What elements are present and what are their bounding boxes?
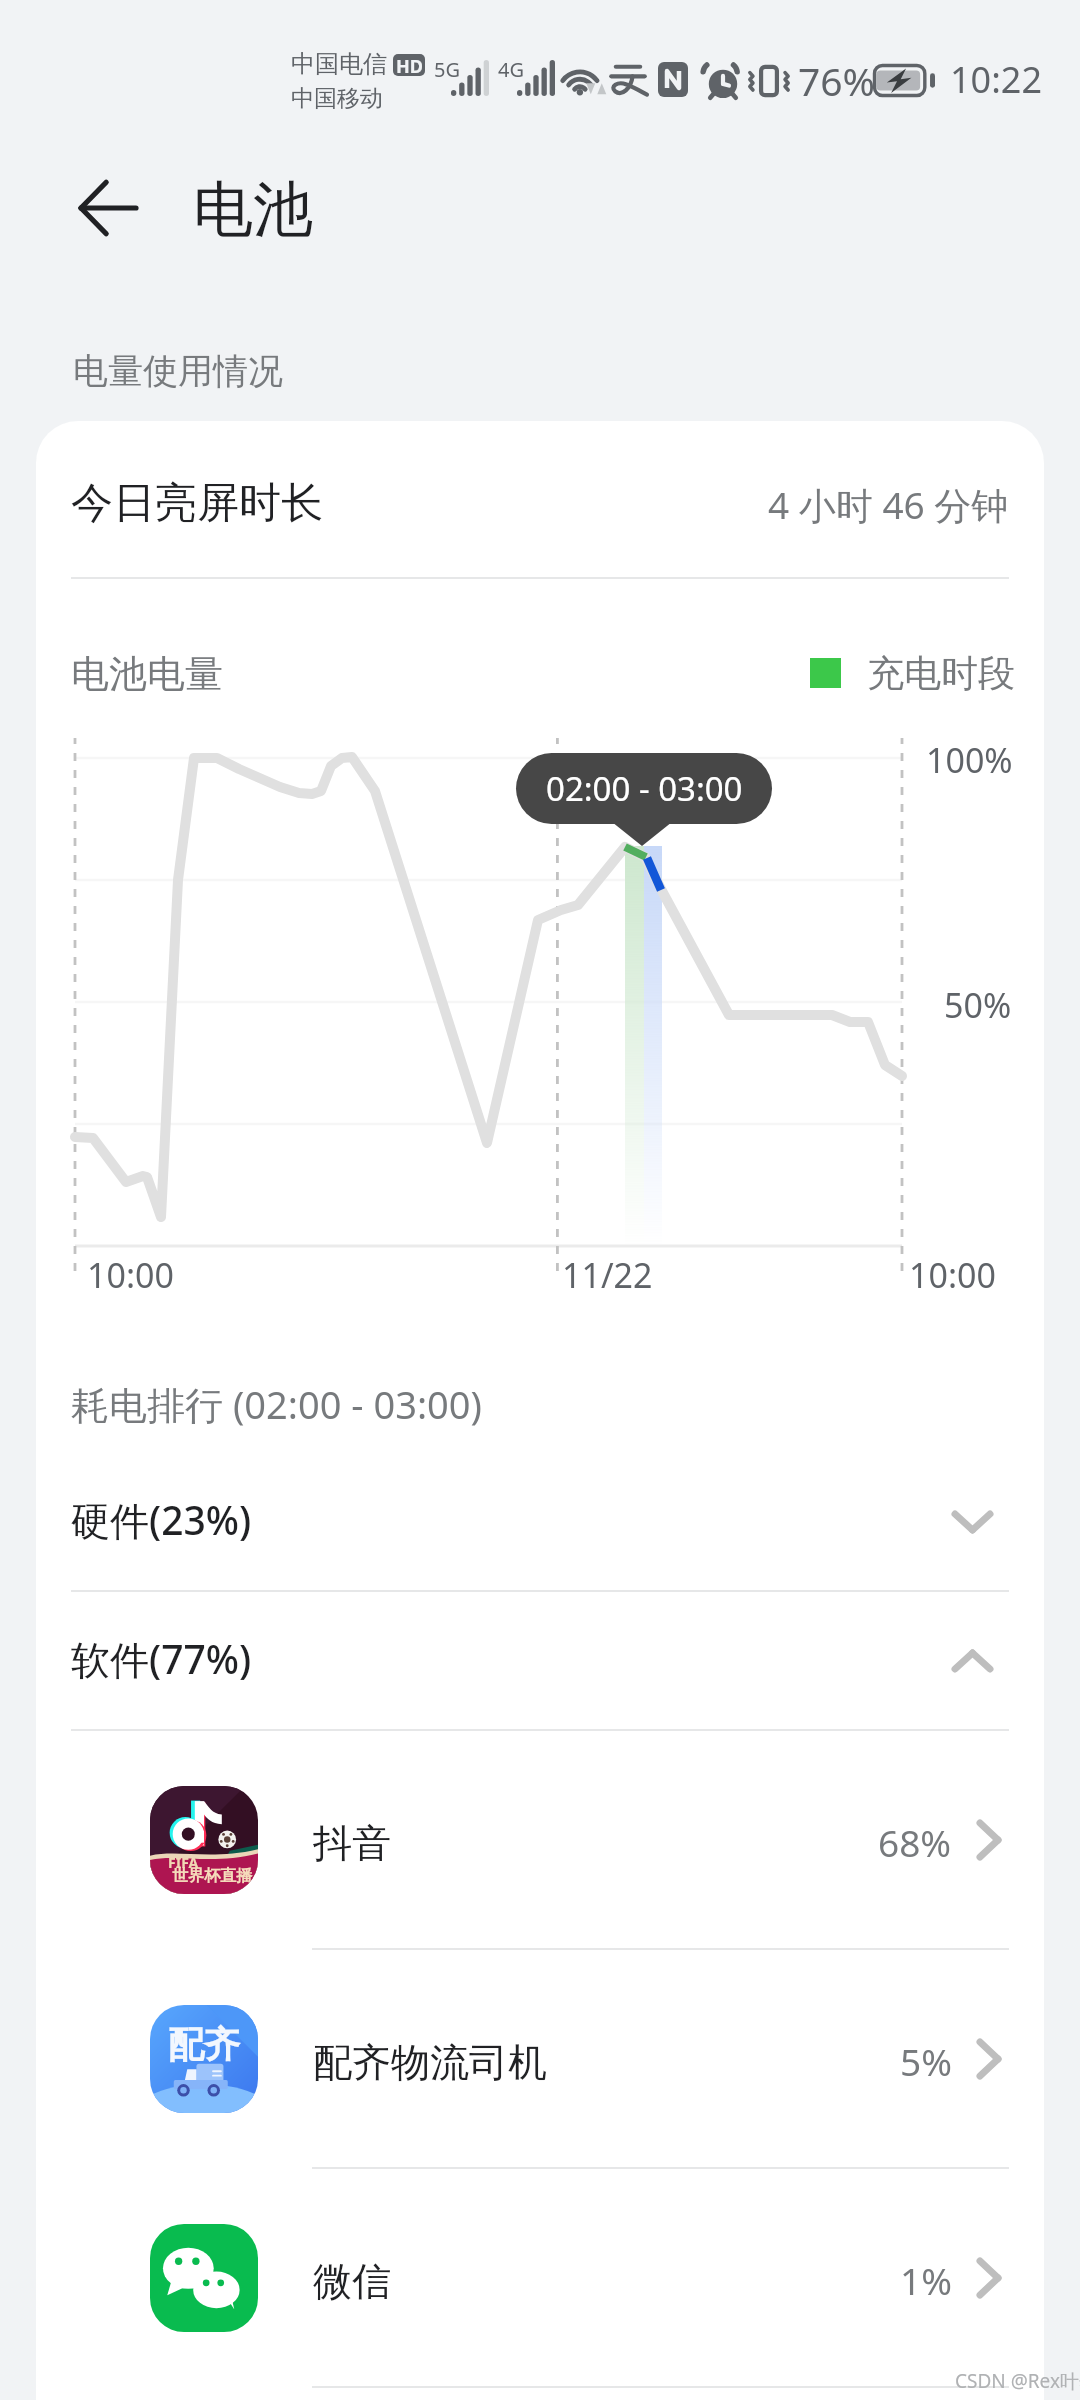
staticText: 100% xyxy=(926,737,1013,783)
staticText: 02:00 - 03:00 xyxy=(546,766,743,811)
staticText: 10:00 xyxy=(87,1252,174,1298)
button[interactable]: 配齐 xyxy=(36,1950,1044,2167)
button[interactable]: 硬件(23%) xyxy=(36,1453,1044,1590)
staticText: 抖音 xyxy=(313,1819,391,1868)
staticText: 微信 xyxy=(313,2257,391,2306)
staticText: 50% xyxy=(944,982,1012,1028)
staticText: 耗电排行 (02:00 - 03:00) xyxy=(71,1378,482,1430)
staticText: 11/22 xyxy=(562,1252,653,1298)
staticText: HD xyxy=(396,54,423,76)
staticText: CSDN @Rex叶然 xyxy=(955,2368,1080,2394)
staticText: 世界杯直播 xyxy=(172,1866,252,1886)
staticText: 1% xyxy=(900,2255,952,2305)
staticText: 5G xyxy=(434,56,460,83)
staticText: 硬件(23%) xyxy=(71,1493,252,1546)
staticText: 10:22 xyxy=(950,55,1043,104)
staticText: 配齐物流司机 xyxy=(313,2038,547,2087)
staticText: 中国电信 xyxy=(291,49,387,79)
staticText: 5% xyxy=(900,2036,952,2086)
staticText: 4G xyxy=(498,56,524,83)
staticText: 配齐 xyxy=(168,2022,240,2067)
staticText: 电池电量 xyxy=(71,650,223,698)
staticText: 68% xyxy=(878,1817,952,1867)
staticText: FIFA xyxy=(168,1853,199,1872)
staticText: 中国移动 xyxy=(291,84,383,113)
button[interactable]: Back xyxy=(62,162,154,254)
staticText: 软件(77%) xyxy=(71,1632,252,1685)
button[interactable]: 今日亮屏时长 xyxy=(36,421,1044,577)
staticText: 10:00 xyxy=(909,1252,996,1298)
button[interactable]: 微信 xyxy=(36,2169,1044,2386)
button[interactable]: FIFA xyxy=(36,1731,1044,1948)
staticText: 今日亮屏时长 xyxy=(71,477,323,530)
staticText: 4 小时 46 分钟 xyxy=(768,479,1009,530)
staticText: 电量使用情况 xyxy=(73,349,283,393)
staticText: 充电时段 xyxy=(867,650,1015,697)
staticText: 76% xyxy=(798,54,876,107)
button[interactable]: 软件(77%) xyxy=(36,1592,1044,1729)
staticText: 电池 xyxy=(193,172,313,248)
